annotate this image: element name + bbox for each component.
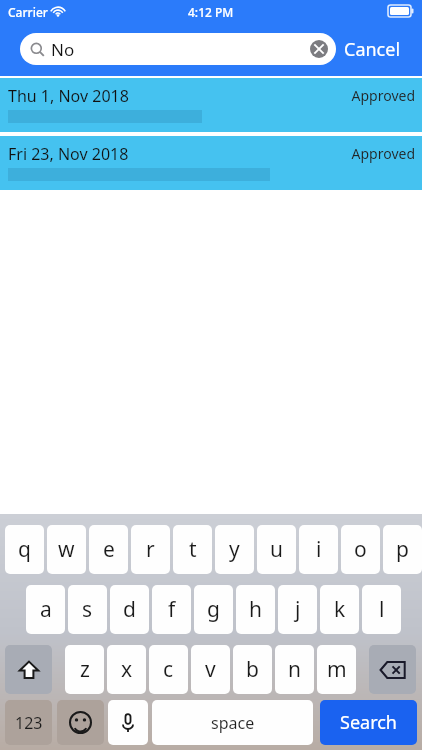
staticText: m: [327, 655, 347, 684]
staticText: p: [396, 535, 409, 564]
button[interactable]: Emoji: [57, 700, 104, 745]
staticText: u: [270, 535, 283, 564]
button[interactable]: s: [68, 585, 107, 634]
staticText: w: [58, 535, 75, 564]
button[interactable]: k: [320, 585, 359, 634]
staticText: Fri 23, Nov 2018: [8, 143, 129, 165]
staticText: r: [146, 535, 155, 564]
button[interactable]: m: [317, 645, 356, 694]
button[interactable]: h: [236, 585, 275, 634]
staticText: o: [354, 535, 367, 564]
staticText: Approved: [351, 86, 415, 105]
staticText: e: [103, 535, 115, 564]
staticText: f: [168, 595, 176, 624]
staticText: l: [379, 595, 385, 624]
button[interactable]: Search: [320, 700, 417, 745]
button[interactable]: b: [233, 645, 272, 694]
staticText: d: [123, 595, 136, 624]
staticText: s: [82, 595, 93, 624]
button[interactable]: o: [341, 525, 380, 574]
staticText: x: [121, 655, 133, 684]
staticText: Thu 1, Nov 2018: [8, 85, 129, 107]
button[interactable]: Clear text: [310, 40, 328, 58]
button[interactable]: Thu 1, Nov 2018: [0, 78, 422, 132]
staticText: j: [295, 595, 301, 624]
button[interactable]: n: [275, 645, 314, 694]
staticText: i: [316, 535, 322, 564]
staticText: n: [288, 655, 301, 684]
button[interactable]: u: [257, 525, 296, 574]
button[interactable]: q: [5, 525, 44, 574]
button[interactable]: y: [215, 525, 254, 574]
staticText: v: [205, 655, 216, 684]
staticText: h: [249, 595, 262, 624]
button[interactable]: c: [149, 645, 188, 694]
staticText: b: [246, 655, 259, 684]
staticText: z: [80, 655, 90, 684]
staticText: Cancel: [344, 37, 401, 62]
button[interactable]: v: [191, 645, 230, 694]
button[interactable]: a: [26, 585, 65, 634]
staticText: space: [211, 712, 255, 734]
button[interactable]: space: [152, 700, 313, 745]
staticText: k: [334, 595, 346, 624]
staticText: q: [18, 535, 31, 564]
button[interactable]: t: [173, 525, 212, 574]
button[interactable]: p: [383, 525, 422, 574]
staticText: a: [40, 595, 52, 624]
staticText: Carrier: [8, 4, 48, 20]
staticText: t: [189, 535, 197, 564]
button[interactable]: w: [47, 525, 86, 574]
staticText: y: [229, 535, 240, 564]
button[interactable]: i: [299, 525, 338, 574]
button[interactable]: No: [20, 33, 336, 65]
staticText: 4:12 PM: [188, 4, 234, 20]
staticText: 123: [15, 712, 43, 734]
staticText: c: [163, 655, 174, 684]
staticText: No: [51, 38, 75, 61]
button[interactable]: l: [362, 585, 401, 634]
button[interactable]: j: [278, 585, 317, 634]
button[interactable]: e: [89, 525, 128, 574]
button[interactable]: z: [65, 645, 104, 694]
button[interactable]: g: [194, 585, 233, 634]
button[interactable]: Fri 23, Nov 2018: [0, 136, 422, 190]
button[interactable]: Dictate: [108, 700, 148, 745]
button[interactable]: Shift: [5, 645, 52, 694]
staticText: Approved: [351, 144, 415, 163]
button[interactable]: r: [131, 525, 170, 574]
button[interactable]: d: [110, 585, 149, 634]
button[interactable]: Cancel: [344, 33, 401, 65]
staticText: g: [207, 595, 220, 624]
button[interactable]: x: [107, 645, 146, 694]
staticText: Search: [340, 710, 397, 735]
button[interactable]: Backspace: [369, 645, 416, 694]
button[interactable]: 123: [5, 700, 52, 745]
button[interactable]: f: [152, 585, 191, 634]
